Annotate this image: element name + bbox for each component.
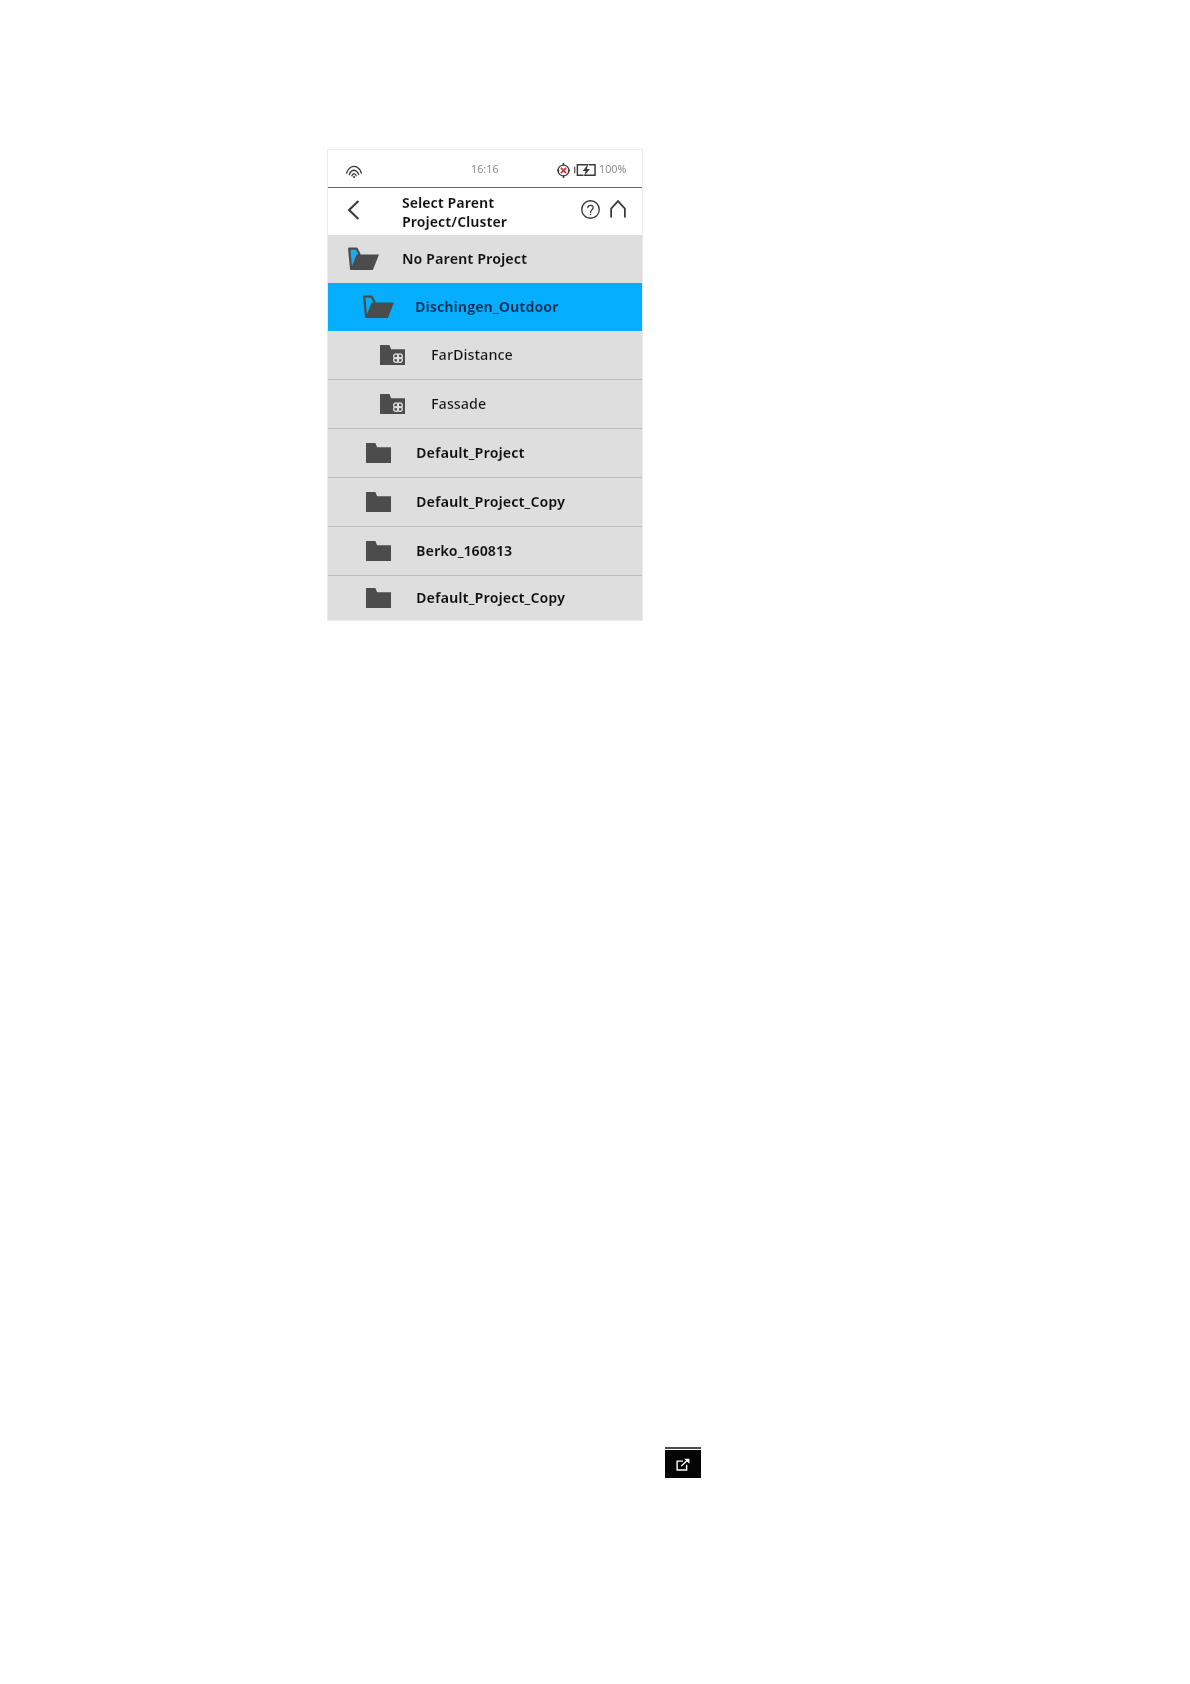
button[interactable]: Open in new window [665, 1450, 701, 1478]
staticText: 16:16 [471, 161, 499, 176]
button[interactable]: Default_Project_Copy [328, 478, 642, 526]
staticText: Default_Project [416, 443, 525, 462]
staticText: Fassade [431, 394, 487, 413]
staticText: Default_Project_Copy [416, 492, 566, 511]
button[interactable]: Back [328, 188, 376, 235]
staticText: Select Parent Project/Cluster [402, 193, 508, 231]
staticText: Dischingen_Outdoor [415, 297, 559, 316]
button[interactable]: Default_Project_Copy [328, 576, 642, 620]
staticText: Berko_160813 [416, 541, 513, 560]
button[interactable]: Help [576, 195, 604, 223]
staticText: No Parent Project [402, 249, 528, 268]
button[interactable]: FarDistance [328, 331, 642, 379]
button[interactable]: No Parent Project [328, 235, 642, 283]
button[interactable]: Dischingen_Outdoor [328, 283, 642, 331]
button[interactable]: Fassade [328, 380, 642, 428]
button[interactable]: Default_Project [328, 429, 642, 477]
staticText: Default_Project_Copy [416, 588, 566, 607]
button[interactable]: Berko_160813 [328, 527, 642, 575]
staticText: FarDistance [431, 345, 513, 364]
staticText: 100% [599, 161, 627, 176]
button[interactable]: Home [604, 195, 632, 223]
